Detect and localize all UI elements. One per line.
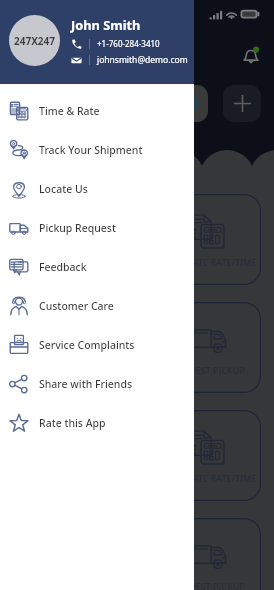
staticText: CALCULATE RATE/TIME (159, 256, 257, 268)
staticText: johnsmith@demo.com (97, 54, 188, 66)
button[interactable]: Track Your Shipment (0, 130, 194, 169)
button[interactable]: Notifications (243, 47, 259, 63)
staticText: Pickup Request (39, 221, 116, 235)
button[interactable]: Feedback (0, 247, 194, 286)
button[interactable]: Locate Us (0, 169, 194, 208)
staticText: Time & Rate (39, 104, 100, 118)
staticText: John Smith (71, 16, 141, 33)
button[interactable]: Rate this App (0, 403, 194, 442)
button[interactable]: CALCULATE RATE/TIME (154, 410, 261, 501)
button[interactable]: REQUEST PICKUP (154, 302, 261, 393)
staticText: 247X247 (14, 34, 56, 48)
staticText: Share with Friends (39, 377, 133, 391)
button[interactable]: REQUEST PICKUP (154, 518, 261, 590)
staticText: Customer Care (39, 299, 114, 313)
button[interactable]: Share with Friends (0, 364, 194, 403)
button[interactable]: Time & Rate (0, 91, 194, 130)
staticText: Feedback (39, 260, 87, 274)
button[interactable]: Service Complaints (0, 325, 194, 364)
staticText: REQUEST PICKUP (171, 364, 245, 376)
button[interactable]: Customer Care (0, 286, 194, 325)
staticText: Locate Us (39, 182, 88, 196)
button[interactable]: CALCULATE RATE/TIME (154, 194, 261, 285)
staticText: Service Complaints (39, 338, 135, 352)
staticText: Rate this App (39, 416, 106, 430)
staticText: REQUEST PICKUP (171, 580, 245, 590)
staticText: CALCULATE RATE/TIME (159, 472, 257, 484)
button[interactable]: Filter (148, 85, 208, 122)
staticText: +1-760-284-3410 (97, 38, 160, 49)
button[interactable]: Add (223, 85, 261, 122)
button[interactable]: Pickup Request (0, 208, 194, 247)
staticText: Track Your Shipment (39, 143, 143, 157)
